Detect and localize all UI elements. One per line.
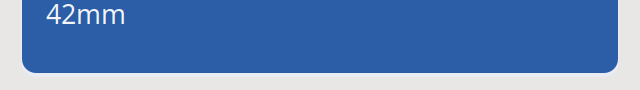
button[interactable] [22,0,618,73]
staticText: 42mm [46,0,126,31]
